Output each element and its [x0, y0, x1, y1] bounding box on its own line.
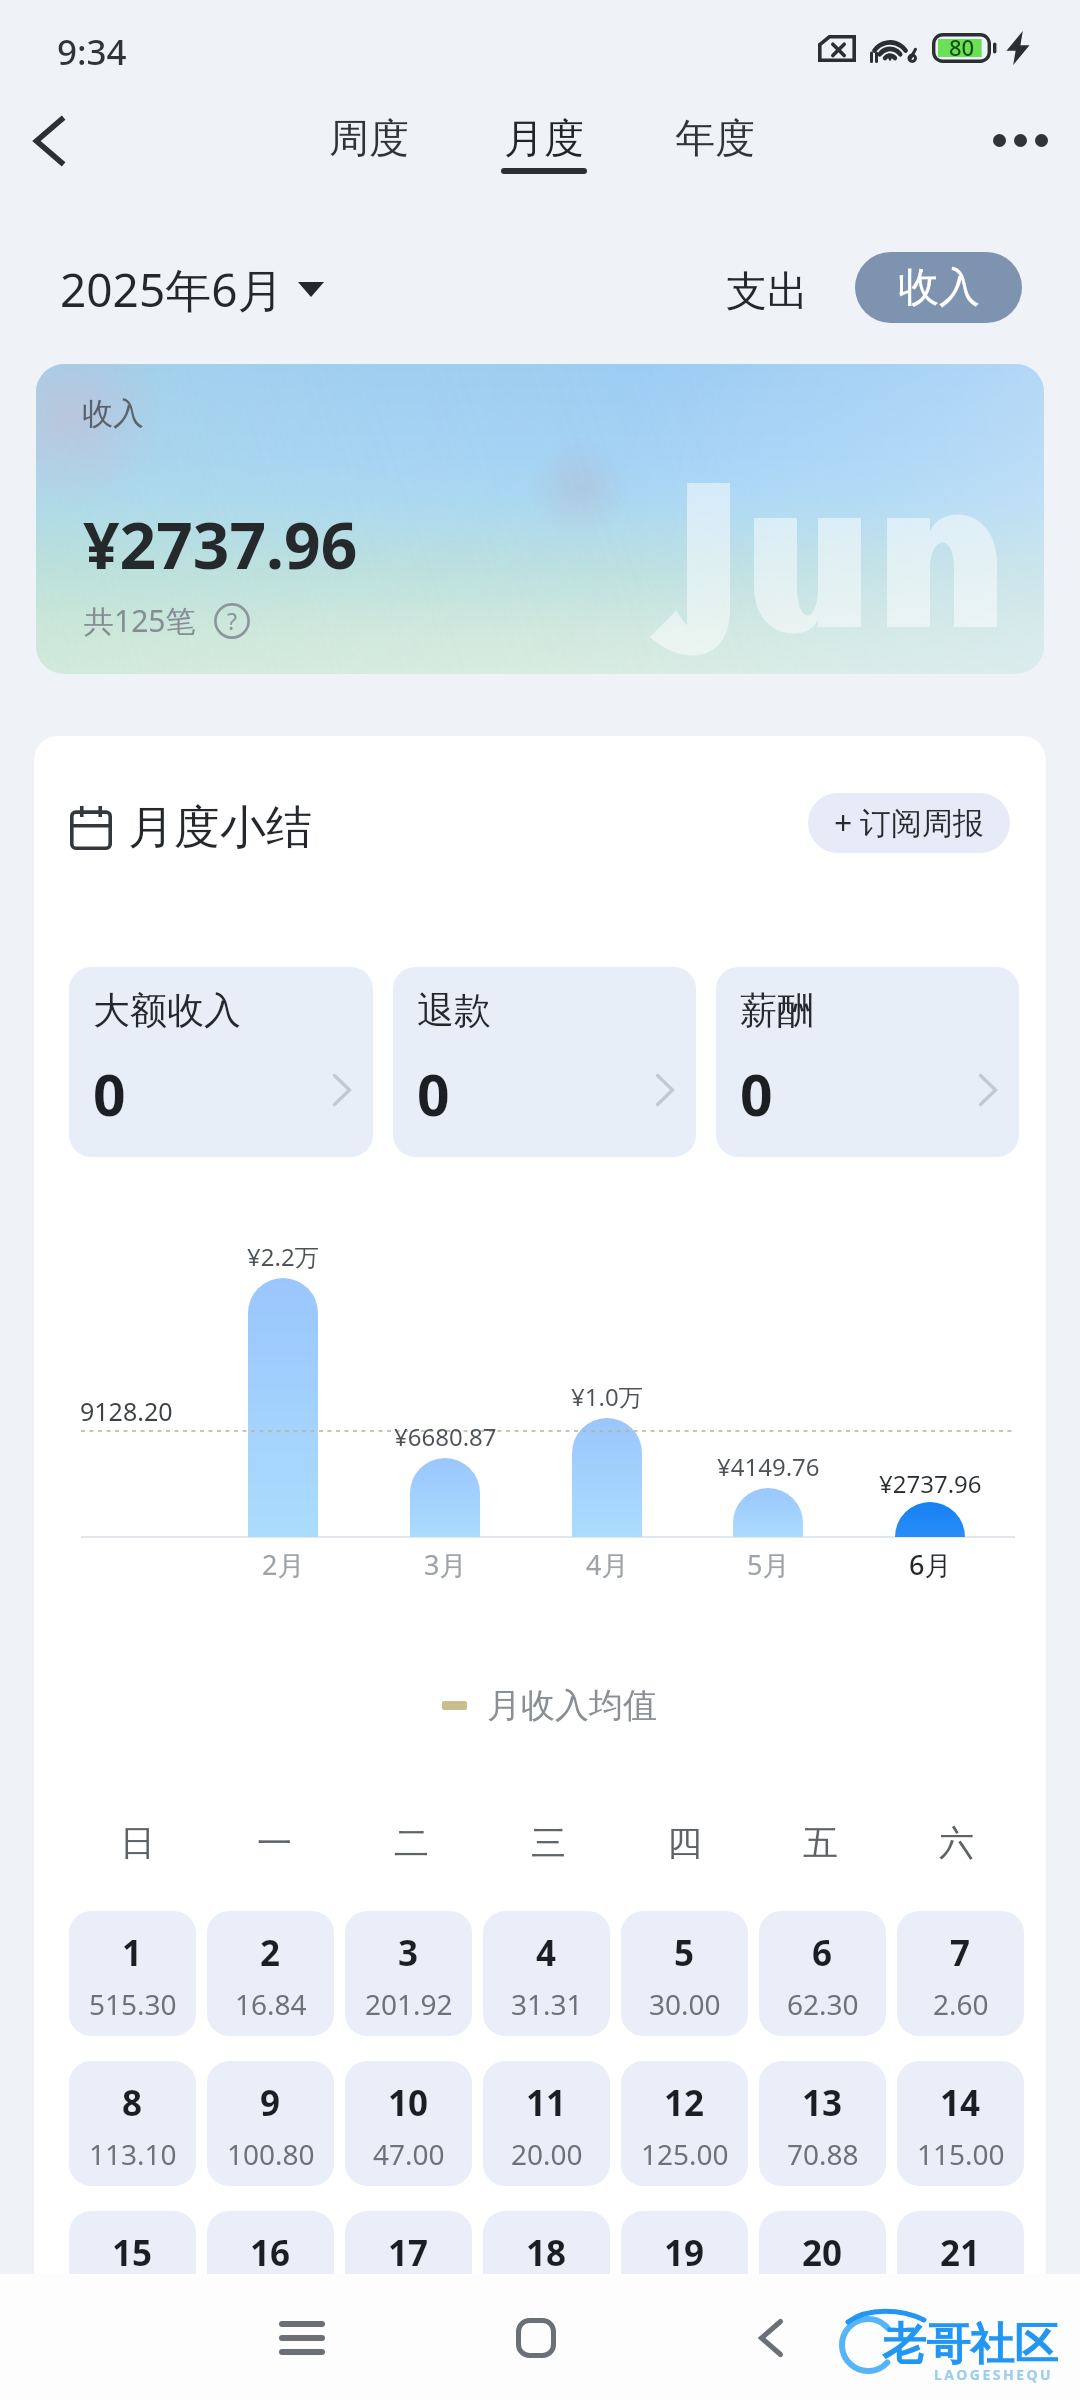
- staticText: 5: [674, 1929, 695, 1977]
- staticText: 20.00: [511, 2135, 583, 2173]
- button[interactable]: 大额收入: [69, 967, 373, 1157]
- button[interactable]: 周度: [325, 113, 413, 163]
- staticText: ¥2737.96: [83, 501, 358, 588]
- staticText: 2: [260, 1929, 281, 1977]
- button[interactable]: 16: [207, 2211, 334, 2274]
- button[interactable]: 2025年6月: [60, 258, 324, 321]
- staticText: 0: [93, 1055, 126, 1133]
- staticText: +: [834, 801, 853, 845]
- staticText: 18: [526, 2229, 567, 2274]
- button[interactable]: 收入: [855, 252, 1022, 323]
- staticText: 20: [802, 2229, 843, 2274]
- staticText: 9:34: [57, 28, 127, 76]
- button[interactable]: 10: [345, 2061, 472, 2186]
- staticText: 退款: [417, 987, 491, 1034]
- staticText: 19: [664, 2229, 705, 2274]
- button[interactable]: 3: [345, 1911, 472, 2036]
- staticText: 16.84: [235, 1985, 307, 2023]
- button[interactable]: More options: [982, 102, 1058, 178]
- button[interactable]: 21: [897, 2211, 1024, 2274]
- staticText: 支出: [726, 266, 808, 318]
- staticText: 62.30: [787, 1985, 859, 2023]
- button[interactable]: Home: [491, 2293, 581, 2383]
- staticText: 12: [664, 2079, 705, 2127]
- button[interactable]: 17: [345, 2211, 472, 2274]
- button[interactable]: 4: [483, 1911, 610, 2036]
- staticText: 周度: [329, 113, 409, 163]
- button[interactable]: 6: [759, 1911, 886, 2036]
- button[interactable]: 1: [69, 1911, 196, 2036]
- button[interactable]: 8: [69, 2061, 196, 2186]
- staticText: LAOGESHEQU: [934, 2365, 1054, 2384]
- staticText: ¥4149.76: [717, 1450, 820, 1483]
- button[interactable]: 月度: [497, 113, 591, 174]
- staticText: 2月: [262, 1546, 305, 1583]
- staticText: 收入: [898, 262, 980, 314]
- staticText: 9: [260, 2079, 281, 2127]
- staticText: ¥2737.96: [879, 1467, 982, 1500]
- button[interactable]: Help: [214, 603, 250, 639]
- staticText: 47.00: [373, 2135, 445, 2173]
- staticText: 老哥社区: [882, 2317, 1058, 2372]
- staticText: 日: [120, 1821, 155, 1865]
- staticText: 30.00: [649, 1985, 721, 2023]
- button[interactable]: 14: [897, 2061, 1024, 2186]
- button[interactable]: 5: [621, 1911, 748, 2036]
- button[interactable]: 15: [69, 2211, 196, 2274]
- staticText: 80: [949, 32, 975, 62]
- staticText: 6: [812, 1929, 833, 1977]
- button[interactable]: 7: [897, 1911, 1024, 2036]
- staticText: 薪酬: [740, 987, 814, 1034]
- button[interactable]: 9: [207, 2061, 334, 2186]
- staticText: 二: [394, 1821, 429, 1865]
- staticText: 100.80: [227, 2135, 315, 2173]
- staticText: 收入: [82, 394, 144, 433]
- staticText: 0: [417, 1055, 450, 1133]
- button[interactable]: 支出: [712, 252, 822, 332]
- button[interactable]: 11: [483, 2061, 610, 2186]
- staticText: 16: [250, 2229, 291, 2274]
- staticText: 共125笔: [84, 600, 196, 641]
- staticText: 70.88: [787, 2135, 859, 2173]
- staticText: 月度小结: [128, 799, 312, 857]
- button[interactable]: +: [808, 793, 1010, 853]
- staticText: 3: [398, 1929, 419, 1977]
- staticText: 201.92: [365, 1985, 453, 2023]
- staticText: 7: [950, 1929, 971, 1977]
- staticText: 4月: [586, 1546, 629, 1583]
- button[interactable]: 2: [207, 1911, 334, 2036]
- staticText: 31.31: [511, 1985, 583, 2023]
- staticText: 2025年6月: [60, 258, 284, 321]
- button[interactable]: 薪酬: [716, 967, 1019, 1157]
- staticText: 0: [740, 1055, 773, 1133]
- button[interactable]: Back: [726, 2293, 816, 2383]
- staticText: 月度: [504, 113, 584, 163]
- staticText: 4: [536, 1929, 557, 1977]
- staticText: ¥2.2万: [247, 1240, 319, 1273]
- button[interactable]: 收入: [36, 364, 1044, 674]
- staticText: 四: [667, 1821, 702, 1865]
- button[interactable]: Back: [11, 103, 87, 179]
- button[interactable]: 19: [621, 2211, 748, 2274]
- button[interactable]: 18: [483, 2211, 610, 2274]
- staticText: 月收入均值: [487, 1684, 657, 1726]
- staticText: 2.60: [933, 1985, 989, 2023]
- staticText: 5月: [747, 1546, 790, 1583]
- button[interactable]: Recent apps: [257, 2293, 347, 2383]
- staticText: 13: [802, 2079, 843, 2127]
- staticText: 17: [388, 2229, 429, 2274]
- staticText: 五: [803, 1821, 838, 1865]
- staticText: ?: [227, 605, 237, 636]
- button[interactable]: 退款: [393, 967, 696, 1157]
- button[interactable]: 13: [759, 2061, 886, 2186]
- staticText: 9128.20: [80, 1394, 173, 1428]
- button[interactable]: 20: [759, 2211, 886, 2274]
- staticText: 14: [940, 2079, 981, 2127]
- staticText: 订阅周报: [860, 804, 984, 843]
- staticText: 六: [939, 1821, 974, 1865]
- button[interactable]: 12: [621, 2061, 748, 2186]
- staticText: ¥1.0万: [571, 1380, 643, 1413]
- button[interactable]: 年度: [671, 113, 759, 163]
- staticText: 15: [112, 2229, 153, 2274]
- staticText: 8: [122, 2079, 143, 2127]
